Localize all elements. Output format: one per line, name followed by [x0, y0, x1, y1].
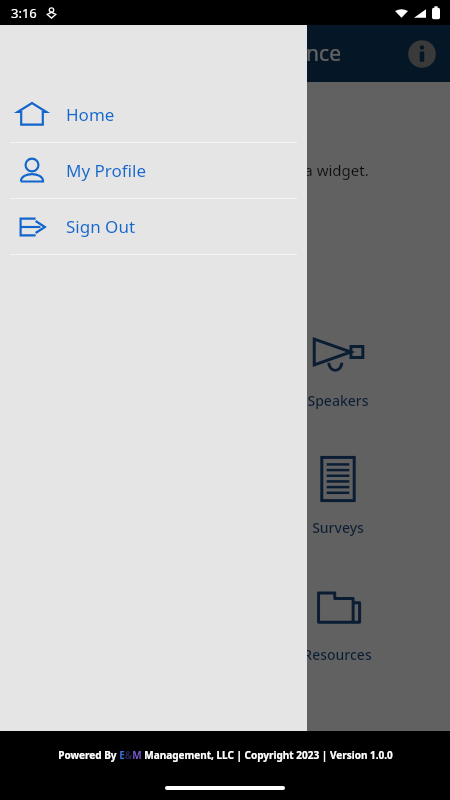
staticText: Sign Out	[66, 215, 136, 238]
staticText: Welcome. Tap a widget.	[203, 160, 369, 180]
staticText: Powered By E&M Management, LLC | Copyrig…	[58, 748, 393, 762]
staticText: Speakers	[307, 391, 369, 410]
button[interactable]: Sign Out	[0, 199, 307, 254]
button[interactable]: Home	[0, 87, 307, 142]
button[interactable]: My Profile	[0, 143, 307, 198]
button[interactable]: Surveys	[225, 431, 450, 558]
staticText: Conference	[228, 39, 342, 68]
button[interactable]: Speakers	[225, 304, 450, 431]
staticText: Surveys	[312, 518, 364, 537]
staticText: 3:16	[11, 4, 37, 22]
button[interactable]: Info	[407, 39, 437, 69]
staticText: My Profile	[66, 159, 146, 182]
staticText: Home	[66, 103, 115, 126]
button[interactable]: Resources	[225, 558, 450, 685]
staticText: Resources	[303, 645, 372, 664]
